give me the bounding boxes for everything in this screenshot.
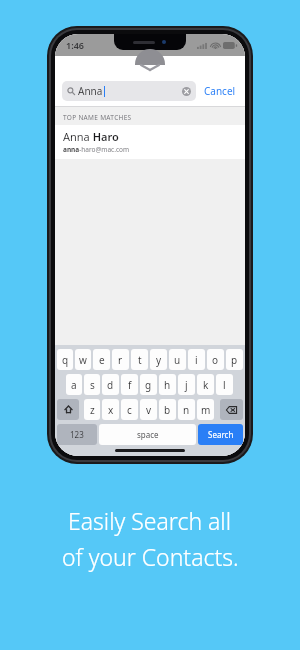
staticText: 1:46 bbox=[66, 39, 84, 51]
staticText: c bbox=[127, 403, 132, 417]
staticText: g bbox=[145, 378, 152, 392]
staticText: s bbox=[90, 378, 95, 392]
staticText: Cancel bbox=[204, 84, 236, 98]
staticText: n bbox=[183, 403, 190, 417]
button[interactable]: space bbox=[99, 424, 196, 445]
staticText: anna-haro@mac.com bbox=[63, 145, 130, 154]
button[interactable]: j bbox=[178, 374, 195, 395]
button[interactable]: s bbox=[84, 374, 100, 395]
button[interactable]: Shift bbox=[57, 399, 79, 420]
button[interactable]: Anna Haro bbox=[55, 125, 245, 159]
staticText: l bbox=[223, 378, 226, 392]
staticText: m bbox=[201, 403, 211, 417]
button[interactable]: z bbox=[84, 399, 100, 420]
staticText: p bbox=[231, 353, 238, 367]
staticText: o bbox=[212, 353, 219, 367]
button[interactable]: c bbox=[121, 399, 138, 420]
button[interactable]: h bbox=[159, 374, 176, 395]
staticText: i bbox=[195, 353, 198, 367]
button[interactable]: f bbox=[121, 374, 138, 395]
button[interactable]: e bbox=[93, 349, 110, 370]
staticText: y bbox=[156, 353, 162, 367]
button[interactable]: t bbox=[131, 349, 148, 370]
staticText: Search bbox=[208, 429, 234, 440]
staticText: w bbox=[79, 353, 87, 367]
button[interactable]: q bbox=[57, 349, 73, 370]
button[interactable]: l bbox=[216, 374, 233, 395]
staticText: r bbox=[118, 353, 123, 367]
staticText: j bbox=[185, 378, 188, 392]
button[interactable]: r bbox=[112, 349, 129, 370]
staticText: Easily Search all bbox=[68, 505, 232, 536]
button[interactable]: b bbox=[159, 399, 176, 420]
staticText: x bbox=[108, 403, 114, 417]
staticText: d bbox=[107, 378, 114, 392]
button[interactable]: u bbox=[169, 349, 186, 370]
staticText: v bbox=[146, 403, 152, 417]
staticText: q bbox=[62, 353, 69, 367]
staticText: u bbox=[174, 353, 181, 367]
staticText: b bbox=[164, 403, 171, 417]
button[interactable]: Anna bbox=[62, 81, 196, 101]
staticText: e bbox=[99, 353, 105, 367]
button[interactable]: k bbox=[197, 374, 214, 395]
staticText: z bbox=[90, 403, 95, 417]
staticText: a bbox=[71, 378, 77, 392]
button[interactable]: o bbox=[207, 349, 224, 370]
button[interactable]: v bbox=[140, 399, 157, 420]
staticText: space bbox=[137, 429, 159, 440]
button[interactable]: n bbox=[178, 399, 195, 420]
button[interactable]: g bbox=[140, 374, 157, 395]
staticText: t bbox=[138, 353, 142, 367]
staticText: h bbox=[164, 378, 171, 392]
button[interactable]: Search bbox=[198, 424, 243, 445]
button[interactable]: Collapse bbox=[140, 64, 160, 71]
button[interactable]: i bbox=[188, 349, 205, 370]
button[interactable]: x bbox=[102, 399, 119, 420]
button[interactable]: Delete bbox=[220, 399, 243, 420]
staticText: 123 bbox=[70, 429, 84, 440]
staticText: TOP NAME MATCHES bbox=[63, 113, 132, 122]
button[interactable]: a bbox=[66, 374, 82, 395]
button[interactable]: y bbox=[150, 349, 167, 370]
button[interactable]: 123 bbox=[57, 424, 97, 445]
button[interactable]: Clear text bbox=[182, 87, 191, 96]
button[interactable]: m bbox=[197, 399, 214, 420]
staticText: Anna Haro bbox=[63, 129, 119, 144]
staticText: of your Contacts. bbox=[62, 541, 239, 572]
staticText: Anna bbox=[78, 84, 103, 98]
button[interactable]: p bbox=[226, 349, 243, 370]
button[interactable]: w bbox=[75, 349, 91, 370]
button[interactable]: Cancel bbox=[202, 81, 238, 101]
staticText: k bbox=[203, 378, 209, 392]
staticText: f bbox=[128, 378, 132, 392]
button[interactable]: d bbox=[102, 374, 119, 395]
